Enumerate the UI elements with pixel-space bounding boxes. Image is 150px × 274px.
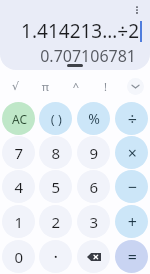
staticText: ( ) — [50, 110, 62, 128]
staticText: 0 — [14, 247, 23, 267]
button[interactable]: 8 — [39, 136, 72, 169]
button[interactable]: ( ) — [39, 102, 72, 135]
staticText: · — [53, 245, 58, 268]
button[interactable]: ! — [90, 73, 120, 99]
other: Expand scientific pad — [127, 78, 144, 95]
staticText: 1 — [14, 212, 23, 232]
button[interactable]: 6 — [77, 170, 110, 203]
staticText: ^ — [72, 79, 79, 94]
button[interactable]: ÷ — [115, 102, 148, 135]
button[interactable]: 0 — [2, 240, 35, 273]
button[interactable]: ^ — [60, 73, 90, 99]
button[interactable]: 1 — [2, 205, 35, 238]
button[interactable]: √ — [0, 73, 30, 99]
staticText: 5 — [51, 177, 60, 197]
staticText: 9 — [89, 143, 98, 163]
staticText: 7 — [14, 143, 23, 163]
staticText: 2 — [51, 212, 60, 232]
button[interactable]: 2 — [39, 205, 72, 238]
button[interactable]: 4 — [2, 170, 35, 203]
staticText: ! — [104, 79, 107, 94]
staticText: 1.414213…÷2 — [21, 18, 139, 44]
button[interactable]: · — [39, 240, 72, 273]
staticText: 0.707106781 — [40, 45, 136, 67]
staticText: 3 — [89, 212, 98, 232]
button[interactable]: 9 — [77, 136, 110, 169]
button[interactable]: % — [77, 102, 110, 135]
button[interactable]: 3 — [77, 205, 110, 238]
staticText: AC — [11, 111, 27, 127]
staticText: + — [127, 211, 137, 233]
button[interactable]: π — [30, 73, 60, 99]
button[interactable]: × — [115, 136, 148, 169]
staticText: 8 — [51, 143, 60, 163]
staticText: = — [127, 246, 137, 268]
staticText: − — [127, 176, 137, 198]
staticText: % — [88, 109, 100, 128]
button[interactable]: 7 — [2, 136, 35, 169]
button[interactable]: More options — [128, 1, 146, 19]
button[interactable]: + — [115, 205, 148, 238]
staticText: 4 — [14, 177, 23, 197]
staticText: π — [41, 79, 49, 94]
staticText: √ — [11, 80, 19, 93]
staticText: 6 — [89, 177, 98, 197]
button[interactable]: − — [115, 170, 148, 203]
button[interactable]: 5 — [39, 170, 72, 203]
button[interactable]: AC — [2, 102, 35, 135]
button[interactable]: Expand scientific pad — [120, 73, 150, 99]
button[interactable]: Backspace — [77, 240, 110, 273]
button[interactable]: = — [115, 240, 148, 273]
staticText: ÷ — [127, 108, 137, 130]
staticText: × — [127, 142, 137, 164]
